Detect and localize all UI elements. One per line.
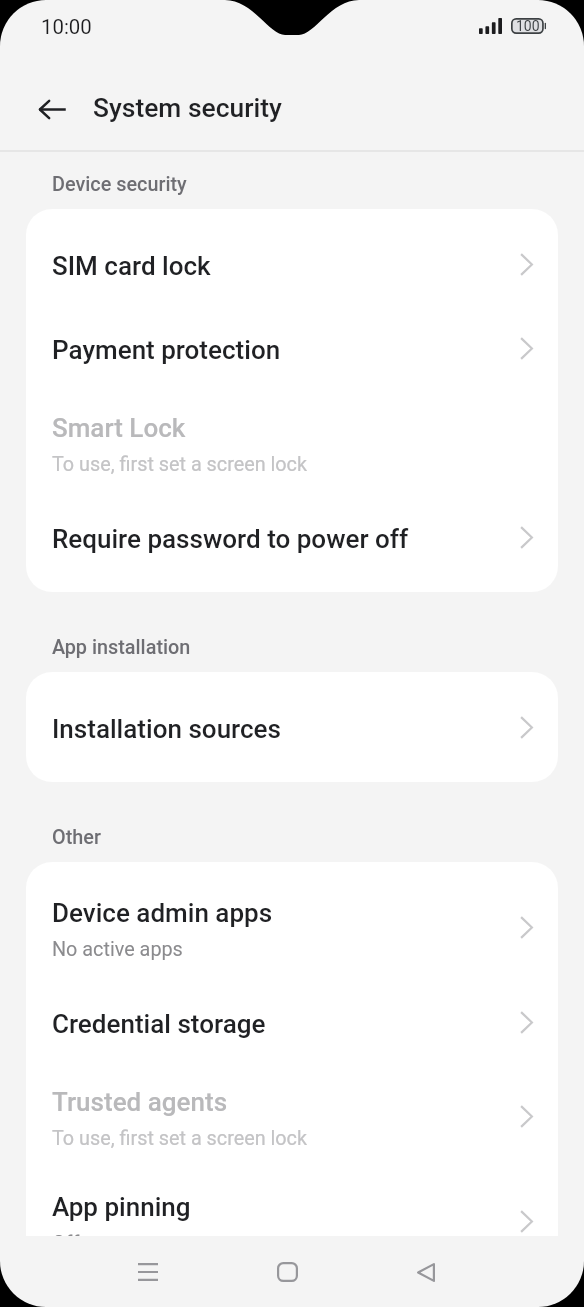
- staticText: 10:00: [41, 15, 92, 39]
- button[interactable]: Payment protection: [26, 306, 558, 390]
- staticText: Trusted agents: [52, 1087, 228, 1117]
- staticText: Smart Lock: [52, 413, 186, 443]
- button[interactable]: App pinning: [26, 1169, 558, 1236]
- staticText: Other: [52, 826, 101, 849]
- staticText: System security: [93, 93, 282, 124]
- staticText: App pinning: [52, 1192, 191, 1222]
- staticText: Device admin apps: [52, 898, 273, 928]
- button[interactable]: Device admin apps: [26, 875, 558, 980]
- staticText: To use, first set a screen lock: [52, 1127, 308, 1150]
- staticText: Device security: [52, 173, 187, 196]
- staticText: To use, first set a screen lock: [52, 453, 308, 476]
- button[interactable]: Require password to power off: [26, 495, 558, 579]
- button[interactable]: Back: [392, 1238, 460, 1306]
- button[interactable]: Smart Lock: [26, 390, 558, 495]
- staticText: No active apps: [52, 938, 183, 961]
- button[interactable]: Credential storage: [26, 980, 558, 1064]
- staticText: Require password to power off: [52, 524, 409, 554]
- button[interactable]: Trusted agents: [26, 1064, 558, 1169]
- staticText: Installation sources: [52, 714, 281, 744]
- staticText: Payment protection: [52, 335, 281, 365]
- staticText: Credential storage: [52, 1009, 266, 1039]
- staticText: Off: [52, 1232, 80, 1236]
- button[interactable]: SIM card lock: [26, 222, 558, 306]
- button[interactable]: Recent apps: [114, 1238, 182, 1306]
- button[interactable]: Back: [6, 63, 98, 155]
- staticText: App installation: [52, 636, 191, 659]
- button[interactable]: Installation sources: [26, 685, 558, 769]
- button[interactable]: Home: [253, 1238, 321, 1306]
- staticText: 100: [516, 18, 540, 34]
- staticText: SIM card lock: [52, 251, 211, 281]
